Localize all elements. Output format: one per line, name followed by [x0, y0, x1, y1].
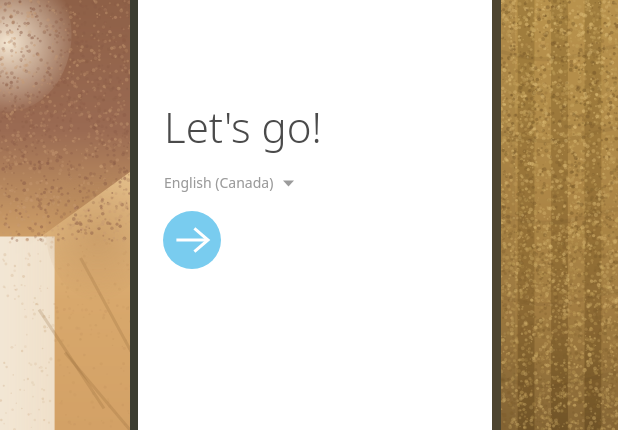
button[interactable]: Next [163, 211, 221, 269]
button[interactable]: English (Canada) [162, 169, 296, 196]
staticText: Let's go! [164, 98, 322, 155]
staticText: English (Canada) [164, 173, 274, 192]
